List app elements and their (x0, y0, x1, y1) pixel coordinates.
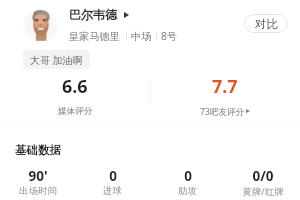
staticText: 巴尔韦德 (69, 7, 117, 22)
button[interactable]: 7.7 (150, 74, 300, 116)
staticText: 7.7 (212, 74, 238, 99)
staticText: 6.6 (62, 74, 88, 99)
staticText: 大哥 加油啊 (30, 53, 83, 67)
button[interactable]: 大哥 加油啊 (23, 50, 90, 69)
button[interactable]: 巴尔韦德 (69, 7, 129, 22)
staticText: 0 (184, 167, 192, 185)
staticText: 基础数据 (15, 143, 61, 157)
staticText: 0 (109, 167, 117, 185)
staticText: 73吧友评分 (200, 106, 245, 116)
staticText: 皇家马德里 (69, 30, 120, 43)
staticText: 进球 (103, 185, 122, 197)
staticText: 黄牌/红牌 (242, 185, 284, 198)
staticText: 出场时间 (19, 185, 57, 197)
staticText: 8号 (161, 29, 178, 43)
staticText: 媒体评分 (58, 106, 93, 116)
button[interactable]: 6.6 (0, 74, 150, 116)
staticText: 90' (28, 167, 48, 185)
staticText: 助攻 (178, 185, 197, 197)
staticText: 对比 (255, 17, 278, 31)
staticText: 0/0 (252, 167, 274, 185)
button[interactable]: 对比 (244, 14, 288, 33)
staticText: 中场 (131, 30, 152, 43)
